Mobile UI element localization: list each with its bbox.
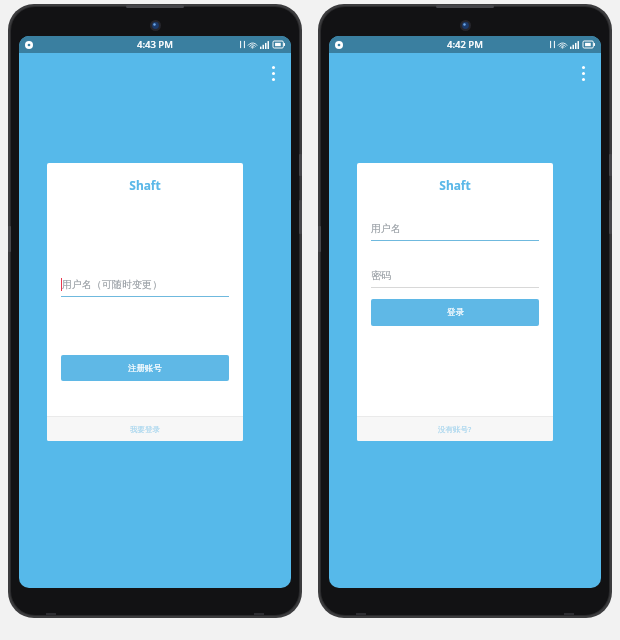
staticText: 注册账号 <box>128 363 162 374</box>
staticText: 用户名（可随时变更） <box>62 278 162 291</box>
button[interactable]: 登录 <box>371 299 539 326</box>
staticText: 4:42 PM <box>447 38 483 51</box>
staticText: 用户名 <box>371 222 401 235</box>
button[interactable]: More options <box>569 59 597 87</box>
button[interactable]: More options <box>259 59 287 87</box>
staticText: 我要登录 <box>130 425 160 434</box>
staticText: 密码 <box>371 269 391 282</box>
staticText: 登录 <box>447 307 464 318</box>
button[interactable]: 注册账号 <box>61 355 229 381</box>
button[interactable]: 密码 <box>371 262 539 288</box>
staticText: 没有账号? <box>438 424 472 434</box>
button[interactable]: 用户名 <box>371 215 539 241</box>
staticText: 4:43 PM <box>137 38 173 51</box>
staticText: Shaft <box>47 177 243 193</box>
staticText: Shaft <box>357 177 553 193</box>
button[interactable]: 用户名（可随时变更） <box>61 271 229 297</box>
button[interactable]: 没有账号? <box>357 416 553 441</box>
button[interactable]: 我要登录 <box>47 416 243 441</box>
